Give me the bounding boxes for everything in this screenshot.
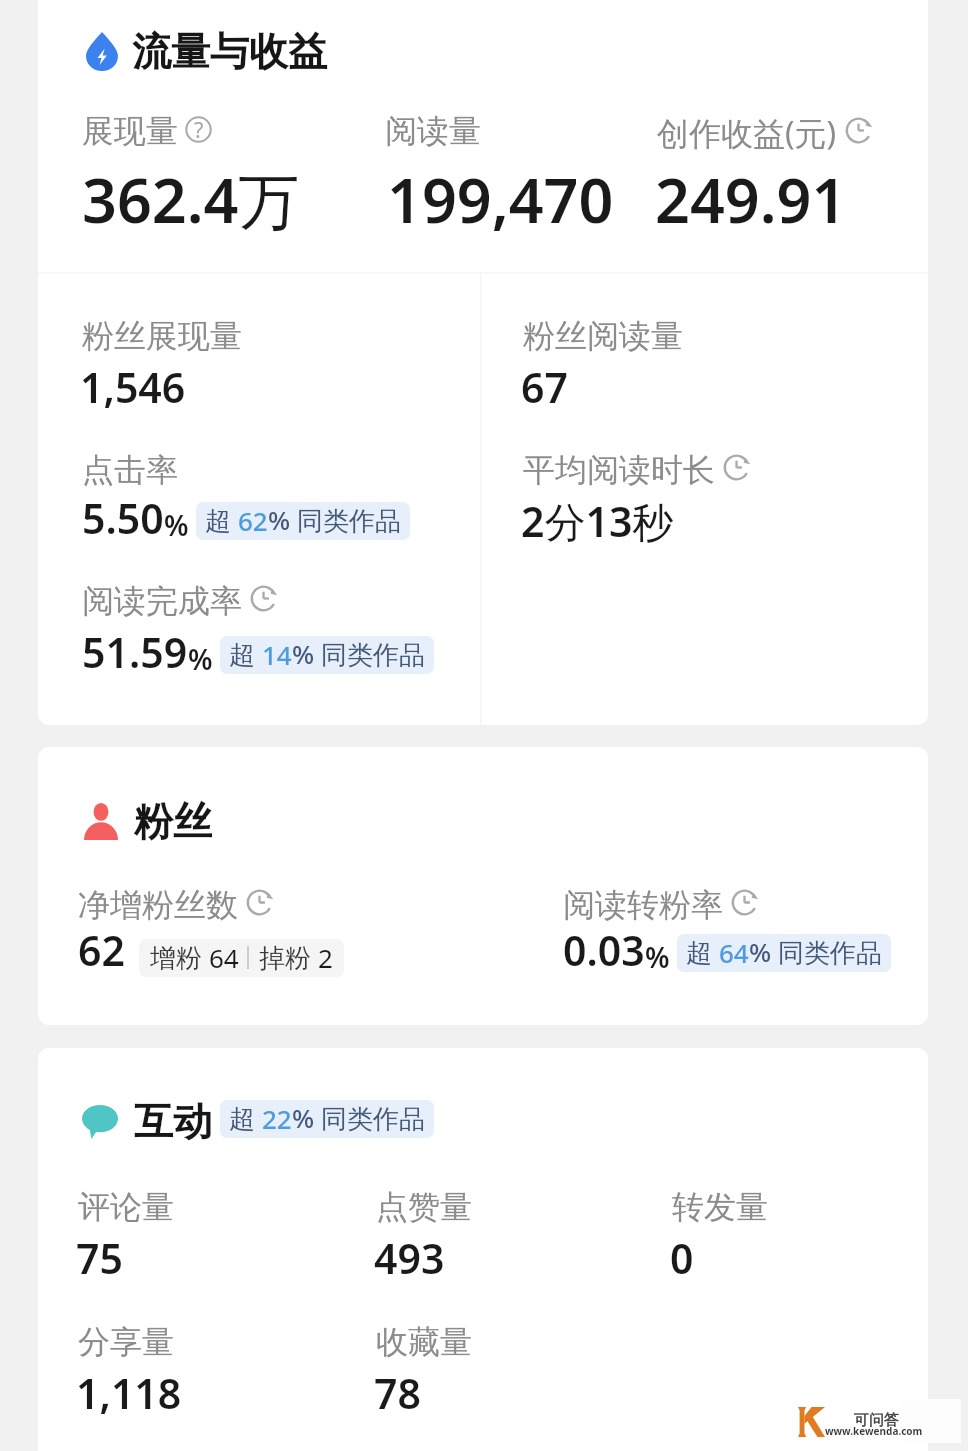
staticText: 493 [374, 1230, 445, 1286]
staticText: 粉丝阅读量 [523, 316, 683, 356]
staticText: 22 [262, 1101, 292, 1136]
other: 流量与收益 [86, 32, 118, 71]
staticText: 362.4万 [82, 158, 300, 241]
staticText: 掉粉 [259, 939, 318, 975]
button[interactable]: 超 [220, 636, 434, 674]
staticText: 转发量 [672, 1187, 768, 1227]
staticText: 2 [318, 940, 333, 975]
button[interactable]: 超 [677, 934, 891, 972]
staticText: 64 [719, 935, 749, 970]
staticText: 平均阅读时长 [523, 450, 715, 490]
other: 互动 [82, 1105, 118, 1139]
staticText: 199,470 [387, 158, 614, 241]
staticText: 64 [209, 940, 239, 975]
staticText: 14 [262, 637, 292, 672]
staticText: 62 [78, 922, 125, 978]
staticText: 78 [374, 1365, 421, 1421]
button[interactable]: 互动 [38, 1048, 928, 1451]
staticText: % [164, 506, 189, 544]
button[interactable]: 超 [220, 1100, 434, 1138]
staticText: % [188, 640, 213, 678]
staticText: 阅读转粉率 [563, 885, 723, 925]
staticText: 1,118 [76, 1365, 182, 1421]
staticText: 粉丝展现量 [82, 316, 242, 356]
staticText: 粉丝 [134, 797, 212, 846]
staticText: % 同类作品 [268, 502, 401, 538]
staticText: % [645, 938, 670, 976]
staticText: 流量与收益 [132, 27, 327, 76]
button[interactable] [38, 0, 928, 725]
staticText: 互动 [134, 1097, 212, 1146]
staticText: ? [194, 115, 204, 142]
staticText: 净增粉丝数 [78, 885, 238, 925]
staticText: 超 [229, 1100, 262, 1136]
staticText: % 同类作品 [749, 934, 882, 970]
staticText: 5.50 [82, 490, 164, 546]
other: 粉丝 [84, 803, 118, 840]
staticText: 点赞量 [376, 1187, 472, 1227]
staticText: 51.59 [82, 624, 188, 680]
staticText: 62 [238, 503, 268, 538]
staticText: 超 [205, 502, 238, 538]
staticText: 249.91 [655, 158, 847, 241]
staticText: 75 [76, 1230, 123, 1286]
staticText: 增粉 [150, 939, 209, 975]
staticText: 1,546 [80, 359, 186, 415]
staticText: 0 [670, 1230, 694, 1286]
staticText: 超 [229, 636, 262, 672]
staticText: www.kewenda.com [825, 1424, 923, 1438]
staticText: 超 [686, 934, 719, 970]
button[interactable]: 超 [196, 502, 410, 540]
staticText: 创作收益(元) [657, 111, 837, 155]
button[interactable]: 增粉 [139, 939, 344, 977]
staticText: 评论量 [78, 1187, 174, 1227]
staticText: 分享量 [78, 1322, 174, 1362]
staticText: % 同类作品 [292, 636, 425, 672]
staticText: 阅读完成率 [82, 581, 242, 621]
staticText: 点击率 [82, 450, 178, 490]
staticText: 2分13秒 [521, 493, 674, 549]
button[interactable]: 粉丝 [38, 747, 928, 1025]
staticText: 可问答 [854, 1411, 899, 1430]
staticText: 阅读量 [385, 111, 481, 151]
staticText: 收藏量 [376, 1322, 472, 1362]
staticText: 67 [521, 359, 568, 415]
staticText: % 同类作品 [292, 1100, 425, 1136]
staticText: 展现量 [82, 111, 178, 151]
staticText: 0.03 [563, 922, 645, 978]
